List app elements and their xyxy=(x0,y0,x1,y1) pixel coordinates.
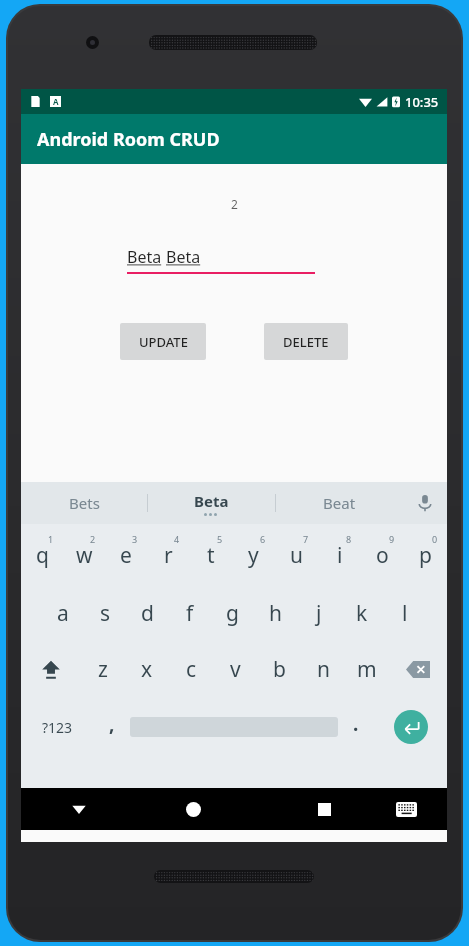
staticText: l xyxy=(402,599,408,628)
staticText: j xyxy=(316,599,322,628)
staticText: 8 xyxy=(346,533,352,545)
staticText: , xyxy=(109,711,115,737)
button[interactable]: Bets xyxy=(21,482,147,524)
staticText: Bets xyxy=(69,493,100,513)
staticText: t xyxy=(207,541,215,570)
button[interactable]: 8 xyxy=(318,524,361,582)
button[interactable]: 9 xyxy=(361,524,404,582)
staticText: a xyxy=(57,599,69,628)
staticText: A xyxy=(53,96,59,107)
button[interactable]: c xyxy=(169,640,213,698)
staticText: s xyxy=(100,599,111,628)
staticText: f xyxy=(186,599,194,628)
button[interactable]: 1 xyxy=(21,524,63,582)
button[interactable]: f xyxy=(168,582,211,640)
button[interactable]: 6 xyxy=(232,524,275,582)
staticText: h xyxy=(269,599,282,628)
button[interactable]: 0 xyxy=(404,524,447,582)
button[interactable]: l xyxy=(383,582,426,640)
staticText: m xyxy=(357,655,377,684)
staticText: u xyxy=(290,541,303,570)
staticText: 7 xyxy=(303,533,309,545)
button[interactable]: Enter xyxy=(374,698,447,756)
button[interactable]: DELETE xyxy=(264,323,348,360)
button[interactable]: Keyboard xyxy=(366,788,447,830)
staticText: UPDATE xyxy=(139,333,188,351)
button[interactable]: g xyxy=(211,582,254,640)
staticText: p xyxy=(419,541,432,570)
button[interactable]: Recents xyxy=(251,788,366,830)
staticText: ?123 xyxy=(42,718,73,737)
button[interactable]: Shift xyxy=(21,640,80,698)
staticText: e xyxy=(120,541,132,570)
staticText: Beta xyxy=(194,491,229,511)
button[interactable]: , xyxy=(94,698,130,756)
button[interactable]: . xyxy=(338,698,374,756)
staticText: k xyxy=(356,599,368,628)
staticText: y xyxy=(248,541,259,570)
staticText: i xyxy=(337,541,343,570)
button[interactable]: Beta xyxy=(148,482,275,524)
button[interactable]: k xyxy=(340,582,383,640)
staticText: 10:35 xyxy=(405,93,439,111)
button[interactable]: Back xyxy=(21,788,136,830)
button[interactable]: ?123 xyxy=(21,698,94,756)
button[interactable]: Android Room CRUD xyxy=(21,114,447,164)
button[interactable]: 7 xyxy=(275,524,318,582)
staticText: d xyxy=(141,599,154,628)
staticText: 2 xyxy=(90,533,96,545)
button[interactable]: n xyxy=(301,640,345,698)
button[interactable]: 2 xyxy=(63,524,105,582)
button[interactable]: 5 xyxy=(189,524,232,582)
staticText: c xyxy=(186,655,197,684)
button[interactable]: Voice input xyxy=(403,482,447,524)
staticText: Beta xyxy=(166,246,201,268)
button[interactable]: Backspace xyxy=(389,640,447,698)
button[interactable]: h xyxy=(254,582,297,640)
staticText: Beta xyxy=(127,246,166,268)
staticText: 3 xyxy=(132,533,138,545)
staticText: 9 xyxy=(389,533,395,545)
button[interactable]: j xyxy=(297,582,340,640)
staticText: r xyxy=(164,541,173,570)
button[interactable]: Beat xyxy=(276,482,403,524)
button[interactable]: Beta xyxy=(21,246,447,286)
button[interactable]: x xyxy=(125,640,169,698)
staticText: b xyxy=(273,655,286,684)
staticText: g xyxy=(226,599,239,628)
button[interactable]: 3 xyxy=(105,524,147,582)
button[interactable]: UPDATE xyxy=(120,323,206,360)
button[interactable]: d xyxy=(126,582,168,640)
staticText: Beat xyxy=(323,493,356,513)
button[interactable]: Home xyxy=(136,788,251,830)
button[interactable]: b xyxy=(257,640,301,698)
staticText: v xyxy=(230,655,241,684)
staticText: 5 xyxy=(217,533,223,545)
staticText: q xyxy=(36,541,49,570)
staticText: Android Room CRUD xyxy=(37,127,220,152)
staticText: DELETE xyxy=(283,333,329,351)
staticText: w xyxy=(76,541,93,570)
staticText: 0 xyxy=(432,533,438,545)
staticText: 4 xyxy=(174,533,180,545)
staticText: 6 xyxy=(260,533,266,545)
button[interactable]: z xyxy=(80,640,125,698)
staticText: x xyxy=(141,655,153,684)
button[interactable]: v xyxy=(213,640,257,698)
staticText: o xyxy=(376,541,389,570)
staticText: n xyxy=(317,655,330,684)
button[interactable]: s xyxy=(84,582,126,640)
staticText: z xyxy=(98,655,108,684)
button[interactable]: 4 xyxy=(147,524,189,582)
button[interactable]: a xyxy=(42,582,84,640)
button[interactable]: m xyxy=(345,640,389,698)
button[interactable]: Space xyxy=(130,698,338,756)
staticText: . xyxy=(353,711,359,737)
staticText: 2 xyxy=(231,196,238,212)
staticText: 1 xyxy=(48,533,54,545)
